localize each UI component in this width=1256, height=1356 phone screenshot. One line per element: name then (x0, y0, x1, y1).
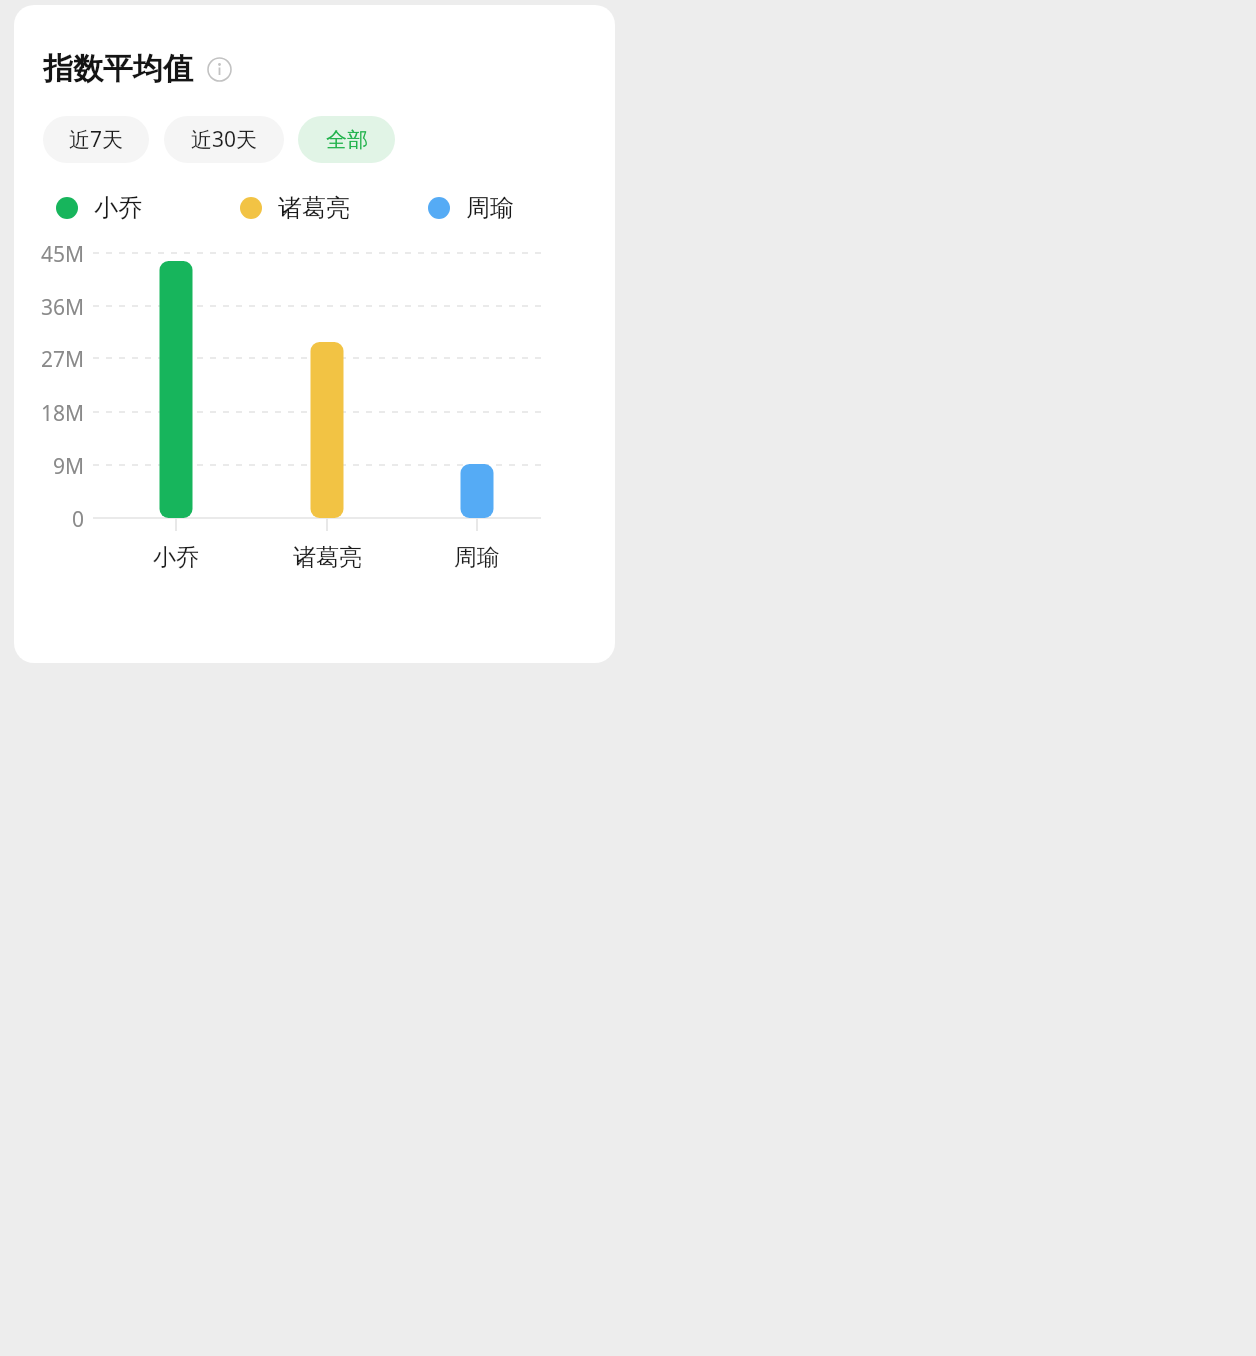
staticText: 近30天 (191, 125, 258, 154)
button[interactable]: 诸葛亮 (240, 193, 350, 223)
staticText: 18M (40, 399, 84, 425)
staticText: 小乔 (153, 543, 199, 572)
staticText: 诸葛亮 (278, 193, 350, 223)
button[interactable]: 近7天 (43, 116, 149, 163)
staticText: 近7天 (69, 125, 124, 154)
staticText: 周瑜 (454, 543, 500, 572)
staticText: 36M (40, 293, 84, 319)
staticText: 27M (40, 345, 84, 371)
staticText: 小乔 (94, 193, 142, 223)
staticText: 全部 (326, 127, 368, 153)
button[interactable]: Info (207, 57, 232, 82)
button[interactable]: 全部 (298, 116, 395, 163)
button[interactable]: 周瑜 (428, 193, 514, 223)
staticText: 0 (71, 505, 84, 531)
button[interactable]: 指数平均值 (43, 50, 232, 88)
staticText: 诸葛亮 (293, 543, 362, 572)
staticText: 9M (52, 452, 84, 478)
staticText: 指数平均值 (43, 50, 193, 88)
staticText: 45M (40, 240, 84, 266)
button[interactable]: 近30天 (164, 116, 284, 163)
button[interactable]: 小乔 (56, 193, 142, 223)
staticText: 周瑜 (466, 193, 514, 223)
